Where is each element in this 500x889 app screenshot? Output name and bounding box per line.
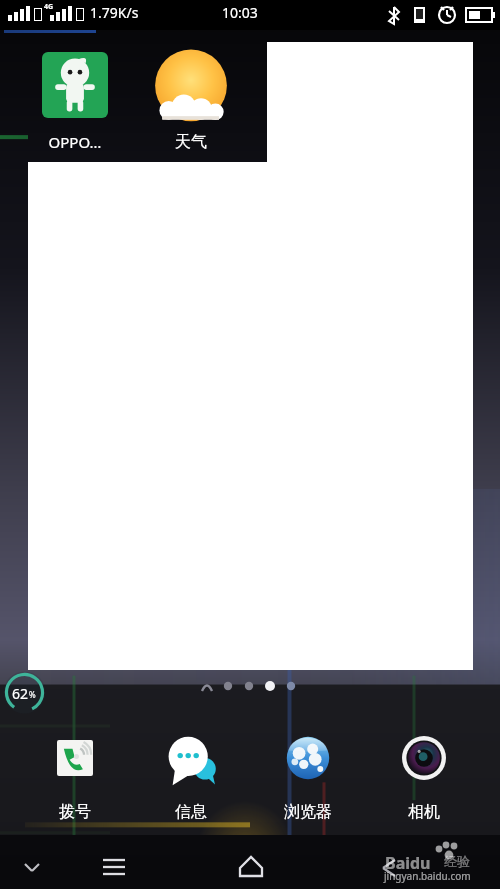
staticText: 1.79K/s	[90, 3, 139, 22]
staticText: 4G	[44, 2, 54, 12]
button[interactable]: 拨号	[35, 718, 115, 830]
staticText: OPPO…	[30, 132, 120, 154]
button[interactable]: OPPO 应用	[42, 52, 108, 118]
staticText: 浏览器	[268, 802, 348, 826]
staticText: Baidu	[385, 852, 431, 874]
staticText: 62	[12, 684, 29, 703]
button[interactable]: 菜单	[92, 845, 136, 889]
staticText: 信息	[151, 802, 231, 826]
staticText: 相机	[384, 802, 464, 826]
button[interactable]: 主页	[228, 843, 274, 889]
staticText: 拨号	[35, 802, 115, 826]
staticText: 10:03	[222, 3, 258, 22]
staticText: %	[29, 689, 36, 700]
button[interactable]: 浏览器	[268, 718, 348, 830]
button[interactable]: 相机	[384, 718, 464, 830]
staticText: 天气	[156, 132, 226, 156]
staticText: jingyan.baidu.com	[384, 869, 471, 883]
button[interactable]: 返回	[366, 845, 410, 889]
button[interactable]: 收起	[10, 845, 54, 889]
button[interactable]: 信息	[151, 718, 231, 830]
button[interactable]: 天气	[152, 48, 230, 126]
button[interactable]: 电量 62%	[4, 672, 45, 713]
staticText: 经验	[444, 853, 470, 869]
